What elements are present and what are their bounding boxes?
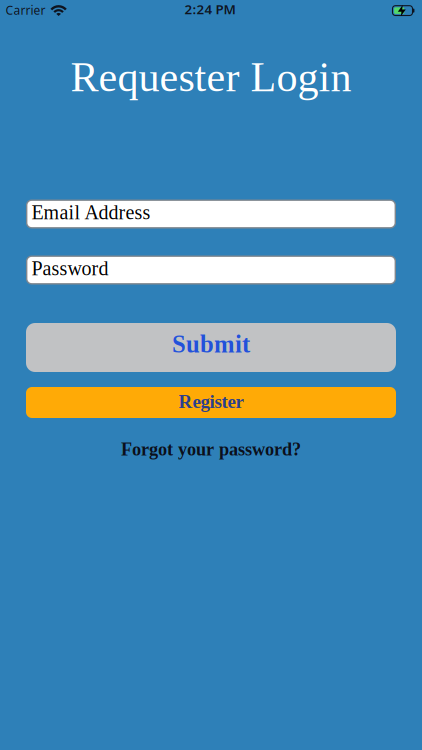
button[interactable]: Forgot your password? bbox=[121, 439, 301, 459]
button[interactable]: Submit bbox=[26, 323, 396, 372]
button[interactable]: Email Address bbox=[26, 199, 396, 228]
staticText: Requester Login bbox=[70, 54, 351, 100]
button[interactable]: Password bbox=[26, 255, 396, 284]
staticText: Email Address bbox=[31, 201, 150, 223]
staticText: Carrier bbox=[5, 2, 45, 18]
staticText: Password bbox=[31, 257, 108, 279]
staticText: 2:24 PM bbox=[184, 0, 235, 18]
button[interactable]: Register bbox=[26, 387, 396, 418]
staticText: Forgot your password? bbox=[121, 439, 301, 459]
staticText: Submit bbox=[172, 330, 250, 358]
staticText: Register bbox=[178, 391, 243, 412]
